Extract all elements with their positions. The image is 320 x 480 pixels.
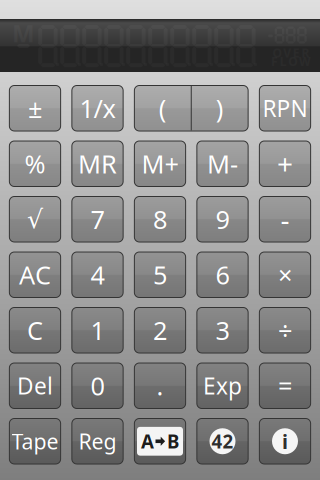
- staticText: 3: [215, 313, 229, 347]
- button[interactable]: Exp: [197, 363, 248, 408]
- staticText: 7: [90, 202, 104, 236]
- button[interactable]: √: [9, 196, 61, 242]
- button[interactable]: ×: [259, 252, 311, 297]
- button[interactable]: 8: [134, 196, 186, 242]
- staticText: 6: [215, 258, 229, 291]
- staticText: √: [27, 205, 43, 234]
- staticText: ×: [278, 258, 292, 291]
- staticText: i: [282, 428, 288, 455]
- button[interactable]: 6: [197, 252, 248, 297]
- staticText: 4: [90, 258, 104, 291]
- staticText: RPN: [262, 93, 307, 123]
- button[interactable]: -: [259, 196, 311, 242]
- button[interactable]: ±: [9, 85, 61, 131]
- button[interactable]: 0: [72, 363, 123, 408]
- staticText: -: [280, 201, 289, 238]
- staticText: +: [277, 145, 293, 182]
- button[interactable]: 5: [134, 252, 186, 297]
- staticText: E: [293, 45, 300, 61]
- button[interactable]: 7: [72, 196, 123, 242]
- staticText: C: [27, 313, 43, 347]
- button[interactable]: =: [259, 363, 311, 408]
- staticText: (: [159, 91, 167, 125]
- staticText: Del: [17, 371, 53, 401]
- staticText: B: [167, 429, 179, 454]
- button[interactable]: Tape: [9, 418, 61, 464]
- staticText: O: [273, 45, 282, 61]
- staticText: 9: [215, 202, 229, 236]
- staticText: %: [24, 147, 45, 180]
- staticText: .: [156, 369, 163, 402]
- button[interactable]: 1/x: [72, 85, 123, 131]
- button[interactable]: Info: [259, 418, 311, 464]
- staticText: A: [141, 429, 154, 454]
- staticText: 5: [153, 258, 167, 291]
- button[interactable]: M+: [134, 141, 186, 186]
- button[interactable]: Constant 42: [197, 418, 248, 464]
- staticText: ): [216, 91, 224, 125]
- staticText: V: [283, 45, 291, 61]
- staticText: Exp: [203, 371, 242, 401]
- button[interactable]: 2: [134, 307, 186, 353]
- button[interactable]: ): [191, 85, 248, 131]
- button[interactable]: Swap A and B: [134, 418, 186, 464]
- button[interactable]: 4: [72, 252, 123, 297]
- button[interactable]: (: [134, 85, 191, 131]
- staticText: 1: [90, 313, 104, 347]
- button[interactable]: .: [134, 363, 186, 408]
- button[interactable]: ÷: [259, 307, 311, 353]
- staticText: 2: [153, 313, 167, 347]
- button[interactable]: RPN: [259, 85, 311, 131]
- button[interactable]: M-: [197, 141, 248, 186]
- button[interactable]: AC: [9, 252, 61, 297]
- staticText: ±: [28, 91, 42, 125]
- button[interactable]: %: [9, 141, 61, 186]
- staticText: M: [12, 17, 35, 49]
- staticText: =: [278, 369, 292, 402]
- staticText: M-: [207, 147, 238, 180]
- button[interactable]: 3: [197, 307, 248, 353]
- button[interactable]: Reg: [72, 418, 123, 464]
- button[interactable]: 1: [72, 307, 123, 353]
- staticText: Tape: [11, 427, 58, 455]
- staticText: R: [301, 45, 309, 61]
- staticText: ÷: [278, 313, 292, 347]
- button[interactable]: +: [259, 141, 311, 186]
- button[interactable]: Del: [9, 363, 61, 408]
- staticText: 1/x: [79, 91, 115, 125]
- staticText: MR: [78, 147, 117, 180]
- button[interactable]: MR: [72, 141, 123, 186]
- staticText: AC: [19, 258, 51, 291]
- staticText: 0: [90, 369, 104, 402]
- staticText: M+: [141, 147, 178, 180]
- button[interactable]: C: [9, 307, 61, 353]
- button[interactable]: 9: [197, 196, 248, 242]
- staticText: 8: [153, 202, 167, 236]
- staticText: 42: [211, 429, 233, 454]
- staticText: Reg: [78, 427, 116, 455]
